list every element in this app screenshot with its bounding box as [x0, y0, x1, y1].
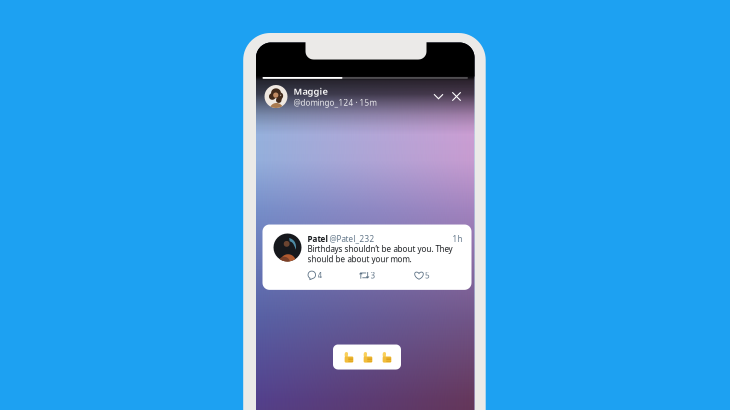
staticText: Maggie — [293, 85, 327, 97]
button[interactable]: React with thumbs up — [360, 350, 374, 364]
staticText: 3 — [370, 270, 375, 281]
button[interactable]: 4 — [307, 269, 359, 281]
button[interactable]: 5 — [414, 269, 454, 281]
button[interactable]: 3 — [359, 269, 414, 281]
staticText: 5 — [425, 270, 430, 281]
staticText: @domingo_124 · 15m — [293, 97, 376, 108]
button[interactable]: React with thumbs up — [341, 350, 355, 364]
button[interactable]: More — [429, 87, 447, 105]
button[interactable]: React with thumbs up — [379, 350, 393, 364]
staticText: 1h — [452, 233, 462, 244]
staticText: 4 — [318, 270, 323, 281]
staticText: Patel — [307, 233, 327, 244]
staticText: @Patel_232 — [327, 233, 374, 244]
staticText: should be about your mom. — [307, 254, 411, 264]
staticText: Birthdays shouldn’t be about you. They — [307, 244, 452, 254]
button[interactable]: Maggie — [264, 85, 376, 108]
button[interactable]: Close — [447, 87, 465, 105]
